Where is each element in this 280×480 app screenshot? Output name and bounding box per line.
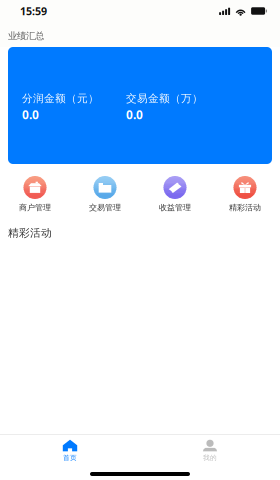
button[interactable]: 交易管理 [70,164,140,214]
button[interactable]: 收益管理 [140,164,210,214]
staticText: 业绩汇总 [8,30,44,42]
button[interactable]: 首页 [0,435,140,462]
staticText: 0.0 [22,106,39,122]
button[interactable]: 我的 [140,435,280,462]
staticText: 商户管理 [19,203,51,212]
staticText: 精彩活动 [229,203,261,212]
staticText: 我的 [203,454,217,462]
staticText: 15:59 [20,4,47,18]
staticText: 交易管理 [89,203,121,212]
staticText: 分润金额（元） [22,92,99,105]
staticText: 0.0 [126,106,143,122]
button[interactable]: 精彩活动 [210,164,280,214]
staticText: 首页 [63,454,77,462]
button[interactable]: 商户管理 [0,164,70,214]
staticText: 精彩活动 [8,226,52,239]
staticText: 收益管理 [159,203,191,212]
staticText: 交易金额（万） [126,92,203,105]
